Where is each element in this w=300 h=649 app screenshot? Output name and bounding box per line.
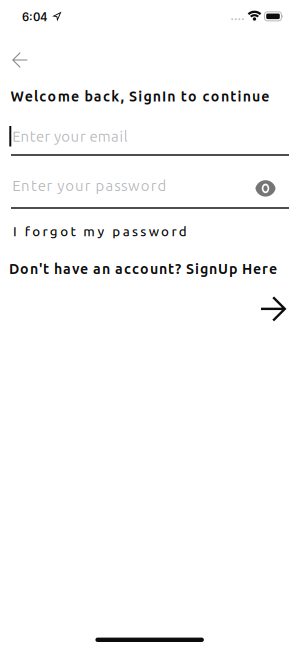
staticText: Welcome back, SignIn to continue [10,88,269,104]
button[interactable]: Sign in [254,290,291,327]
button[interactable]: Don't have an account? SignUp Here [9,261,277,277]
button[interactable]: I forgot my password [13,224,187,239]
staticText: Enter your password [12,177,166,194]
staticText: Don't have an account? SignUp Here [9,261,277,277]
staticText: I forgot my password [13,224,187,239]
staticText: 6:04 [22,10,47,24]
staticText: Enter your email [12,128,128,145]
button[interactable]: Show password [250,175,280,201]
button[interactable]: Back [5,45,35,75]
